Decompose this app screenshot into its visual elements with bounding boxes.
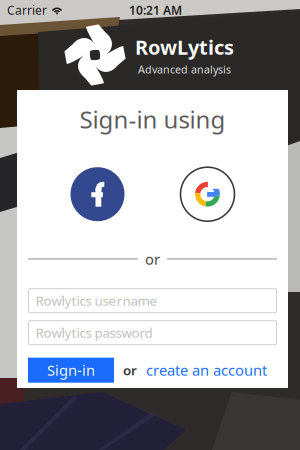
button[interactable]: Rowlytics username — [28, 289, 276, 313]
staticText: 10:21 AM — [129, 2, 182, 18]
staticText: Advanced analysis — [138, 62, 231, 76]
staticText: or — [145, 249, 160, 269]
staticText: or — [123, 361, 137, 379]
staticText: Sign-in — [47, 360, 95, 380]
button[interactable]: Sign in with Google — [180, 167, 234, 221]
button[interactable]: create an account — [146, 360, 267, 380]
staticText: RowLytics — [135, 34, 234, 60]
staticText: create an account — [146, 360, 267, 380]
button[interactable]: Rowlytics password — [28, 321, 276, 345]
staticText: Carrier — [7, 2, 47, 18]
staticText: Sign-in using — [79, 103, 225, 135]
staticText: Rowlytics password — [35, 324, 152, 341]
button[interactable]: Sign in with Facebook — [70, 167, 124, 221]
staticText: Rowlytics username — [35, 292, 157, 309]
button[interactable]: Sign-in — [28, 358, 114, 383]
